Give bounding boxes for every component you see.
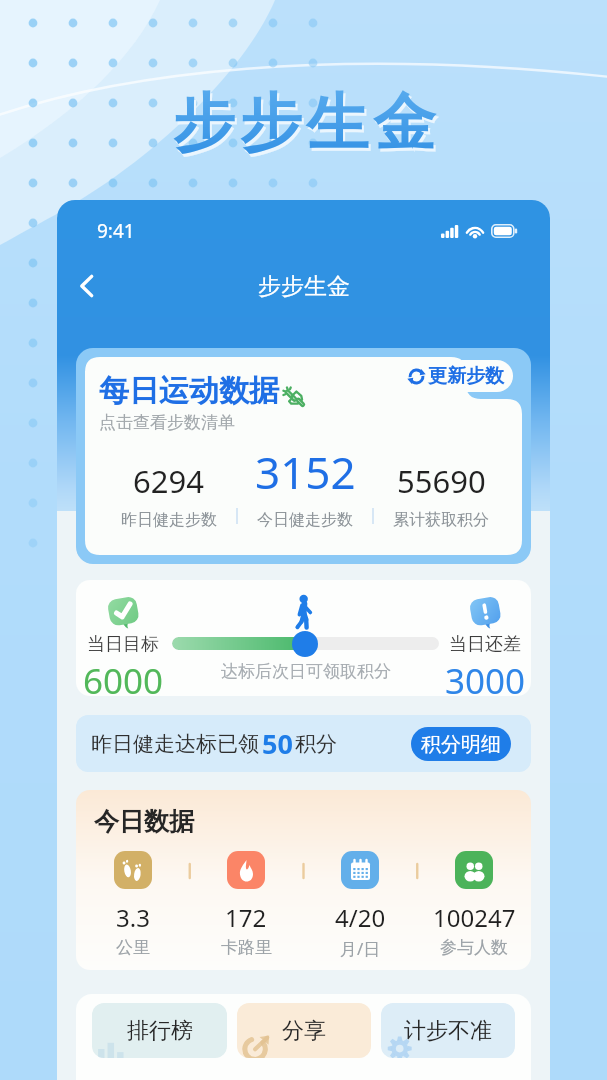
staticText: 点击查看步数清单 (99, 412, 235, 433)
button[interactable]: 积分明细 (411, 727, 511, 761)
staticText: 积分明细 (421, 732, 501, 757)
staticText: 计步不准 (404, 1017, 492, 1045)
button[interactable]: 计步不准 (381, 1003, 515, 1058)
button[interactable]: 当日目标 (76, 580, 531, 696)
staticText: 步步生金 (258, 272, 350, 301)
staticText: 55690 (397, 460, 486, 502)
button[interactable]: 更新步数 (397, 360, 513, 392)
staticText: 50 (262, 725, 293, 762)
staticText: 积分 (295, 731, 337, 757)
staticText: 100247 (433, 901, 516, 934)
staticText: 9:41 (97, 218, 135, 244)
staticText: 172 (225, 901, 267, 934)
staticText: 3152 (255, 442, 356, 502)
button[interactable]: 昨日健走达标已领 (76, 715, 531, 772)
staticText: 月/日 (340, 937, 381, 960)
staticText: 6294 (133, 460, 204, 502)
button[interactable]: 排行榜 (92, 1003, 227, 1058)
staticText: 累计获取积分 (393, 510, 489, 530)
staticText: 今日健走步数 (257, 510, 353, 530)
staticText: 3000 (445, 657, 526, 696)
button[interactable]: 分享 (237, 1003, 371, 1058)
staticText: 卡路里 (221, 937, 272, 958)
staticText: 步步生金 (170, 84, 438, 162)
staticText: 今日数据 (94, 806, 194, 837)
staticText: 昨日健走达标已领 (91, 731, 259, 757)
staticText: 每日运动数据 (99, 372, 279, 410)
staticText: 昨日健走步数 (121, 510, 217, 530)
staticText: 参与人数 (440, 937, 508, 958)
staticText: 4/20 (335, 901, 386, 934)
staticText: 更新步数 (428, 364, 504, 388)
button[interactable]: 今日数据 (76, 790, 531, 970)
staticText: 排行榜 (127, 1017, 193, 1045)
staticText: 分享 (282, 1017, 326, 1045)
staticText: 当日还差 (449, 633, 521, 656)
staticText: 3.3 (116, 901, 150, 934)
button[interactable]: Back (65, 264, 109, 308)
staticText: 达标后次日可领取积分 (221, 661, 391, 682)
staticText: 当日目标 (87, 633, 159, 656)
staticText: 步步生金 (172, 87, 440, 165)
button[interactable]: 更新步数 (76, 348, 531, 564)
staticText: 公里 (116, 937, 150, 958)
staticText: 6000 (83, 657, 164, 696)
